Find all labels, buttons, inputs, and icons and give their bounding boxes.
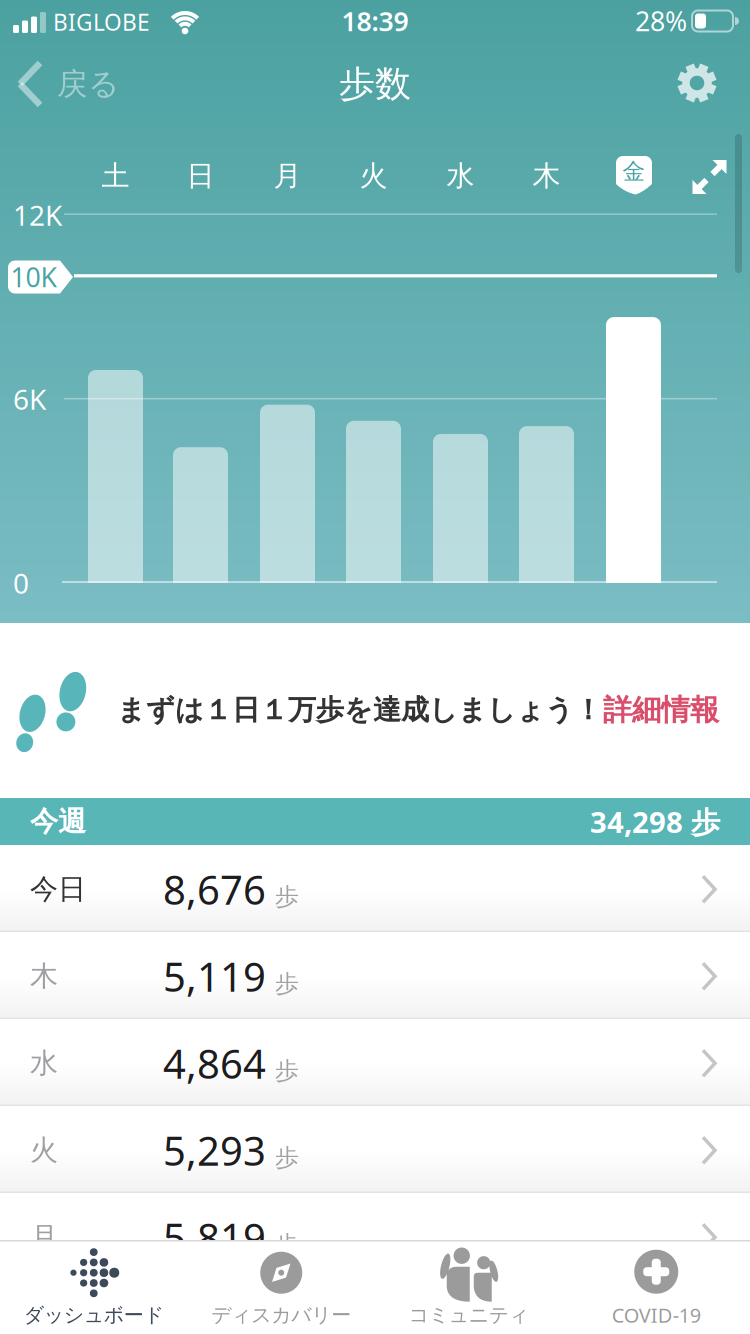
- button[interactable]: 拡大: [692, 159, 727, 195]
- staticText: 歩: [275, 882, 299, 911]
- button[interactable]: 水: [430, 154, 490, 198]
- staticText: 28%: [635, 3, 687, 39]
- staticText: 歩数: [339, 62, 411, 106]
- staticText: まずは１日１万歩を達成しましょう！: [117, 693, 602, 727]
- staticText: 10K: [10, 259, 57, 295]
- staticText: 歩: [275, 1230, 299, 1259]
- staticText: 6K: [13, 380, 46, 418]
- staticText: 歩: [275, 1056, 299, 1085]
- button[interactable]: 火: [343, 154, 403, 198]
- staticText: 戻る: [57, 65, 119, 103]
- button[interactable]: ディスカバリー: [187, 1240, 375, 1334]
- staticText: 8,676: [163, 863, 266, 916]
- button[interactable]: ダッシュボード: [0, 1240, 187, 1334]
- staticText: 火: [30, 1133, 58, 1167]
- staticText: 木: [532, 159, 560, 193]
- staticText: 日: [186, 159, 214, 193]
- button[interactable]: コミュニティ: [375, 1240, 562, 1334]
- staticText: 月: [273, 159, 301, 193]
- staticText: 火: [359, 159, 387, 193]
- staticText: COVID-19: [612, 1302, 701, 1328]
- staticText: 0: [13, 564, 29, 602]
- staticText: 5,819: [163, 1211, 266, 1264]
- staticText: 歩: [275, 969, 299, 998]
- button[interactable]: 日: [170, 154, 230, 198]
- staticText: 5,119: [163, 950, 266, 1003]
- staticText: 詳細情報: [603, 692, 719, 728]
- button[interactable]: 火: [0, 1106, 750, 1193]
- staticText: 今日: [30, 872, 86, 906]
- staticText: ディスカバリー: [211, 1303, 351, 1327]
- staticText: 5,293: [163, 1124, 266, 1177]
- staticText: 18:39: [341, 3, 408, 39]
- staticText: BIGLOBE: [53, 7, 150, 37]
- button[interactable]: 詳細情報: [602, 690, 720, 730]
- button[interactable]: 水: [0, 1019, 750, 1106]
- button[interactable]: 月: [0, 1193, 750, 1280]
- staticText: 34,298 歩: [590, 802, 720, 841]
- button[interactable]: COVID-19: [562, 1240, 750, 1334]
- staticText: 水: [30, 1046, 58, 1080]
- button[interactable]: 土: [85, 154, 145, 198]
- staticText: コミュニティ: [409, 1303, 529, 1327]
- button[interactable]: 戻る: [14, 60, 119, 108]
- staticText: ダッシュボード: [24, 1303, 164, 1327]
- staticText: 今週: [30, 804, 86, 839]
- staticText: 金: [622, 158, 645, 185]
- staticText: 水: [446, 159, 474, 193]
- staticText: 歩: [275, 1143, 299, 1172]
- staticText: 4,864: [163, 1037, 266, 1090]
- staticText: 月: [30, 1220, 58, 1254]
- staticText: 12K: [13, 196, 62, 234]
- button[interactable]: 設定: [674, 60, 720, 106]
- button[interactable]: 金: [616, 156, 652, 196]
- staticText: 土: [101, 159, 129, 193]
- button[interactable]: 木: [0, 932, 750, 1019]
- button[interactable]: 今日: [0, 845, 750, 932]
- staticText: 木: [30, 959, 58, 993]
- button[interactable]: 月: [257, 154, 317, 198]
- button[interactable]: 木: [516, 154, 576, 198]
